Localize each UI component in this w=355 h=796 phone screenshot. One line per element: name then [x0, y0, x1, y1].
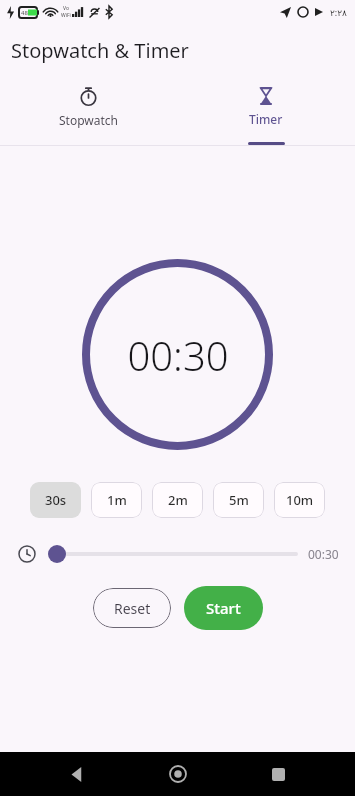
button[interactable]: Back	[53, 752, 101, 796]
staticText: Vo	[63, 5, 69, 12]
staticText: 48	[21, 9, 28, 17]
staticText: 10m	[286, 491, 314, 509]
button[interactable]: Stopwatch	[0, 77, 177, 145]
button[interactable]: 1m	[91, 482, 142, 518]
staticText: 5m	[229, 491, 249, 509]
staticText: ٢:٢٨	[330, 6, 347, 18]
staticText: WiFi	[61, 12, 71, 19]
button[interactable]: 2m	[152, 482, 203, 518]
button[interactable]: Timer	[177, 77, 355, 145]
staticText: 30s	[45, 491, 67, 509]
staticText: 00:30	[127, 328, 229, 382]
staticText: 1m	[107, 491, 127, 509]
staticText: Stopwatch & Timer	[11, 37, 189, 64]
button[interactable]: Reset	[93, 588, 171, 628]
other: Duration	[18, 545, 36, 563]
button[interactable]: Home	[154, 752, 202, 796]
button[interactable]	[48, 543, 296, 565]
staticText: 2m	[168, 491, 188, 509]
staticText: Stopwatch	[59, 112, 118, 128]
button[interactable]: Start	[184, 586, 263, 630]
staticText: Reset	[114, 599, 151, 618]
button[interactable]: 10m	[274, 482, 325, 518]
staticText: Start	[206, 598, 241, 618]
button[interactable]: 5m	[213, 482, 264, 518]
button[interactable]: 30s	[30, 482, 81, 518]
staticText: Timer	[249, 111, 283, 127]
staticText: 00:30	[308, 546, 339, 562]
button[interactable]: Recents	[254, 752, 302, 796]
